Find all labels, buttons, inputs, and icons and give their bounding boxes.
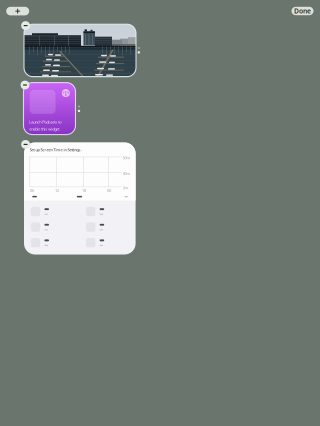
- staticText: enable this widget: [29, 126, 59, 132]
- staticText: 06: [30, 188, 34, 193]
- staticText: Launch Podcasts to: [29, 119, 61, 125]
- staticText: Set up Screen Time in Settings.: [29, 147, 81, 152]
- staticText: 12: [55, 188, 59, 193]
- button[interactable]: Remove Screen Time widget: [21, 140, 30, 149]
- staticText: Done: [294, 7, 311, 15]
- button[interactable]: Done: [291, 7, 313, 15]
- button[interactable]: Photos widget: [24, 24, 136, 77]
- staticText: 60m: [123, 155, 131, 160]
- staticText: 0m: [123, 185, 129, 190]
- button[interactable]: Podcasts widget: [23, 83, 75, 135]
- button[interactable]: Remove Podcasts widget: [21, 81, 29, 89]
- button[interactable]: Remove Photos widget: [21, 21, 30, 30]
- staticText: 00: [107, 188, 111, 193]
- staticText: 30m: [123, 171, 131, 176]
- button[interactable]: Screen Time widget: [24, 142, 136, 254]
- staticText: 18: [82, 188, 86, 193]
- button[interactable]: Add widget: [6, 7, 29, 15]
